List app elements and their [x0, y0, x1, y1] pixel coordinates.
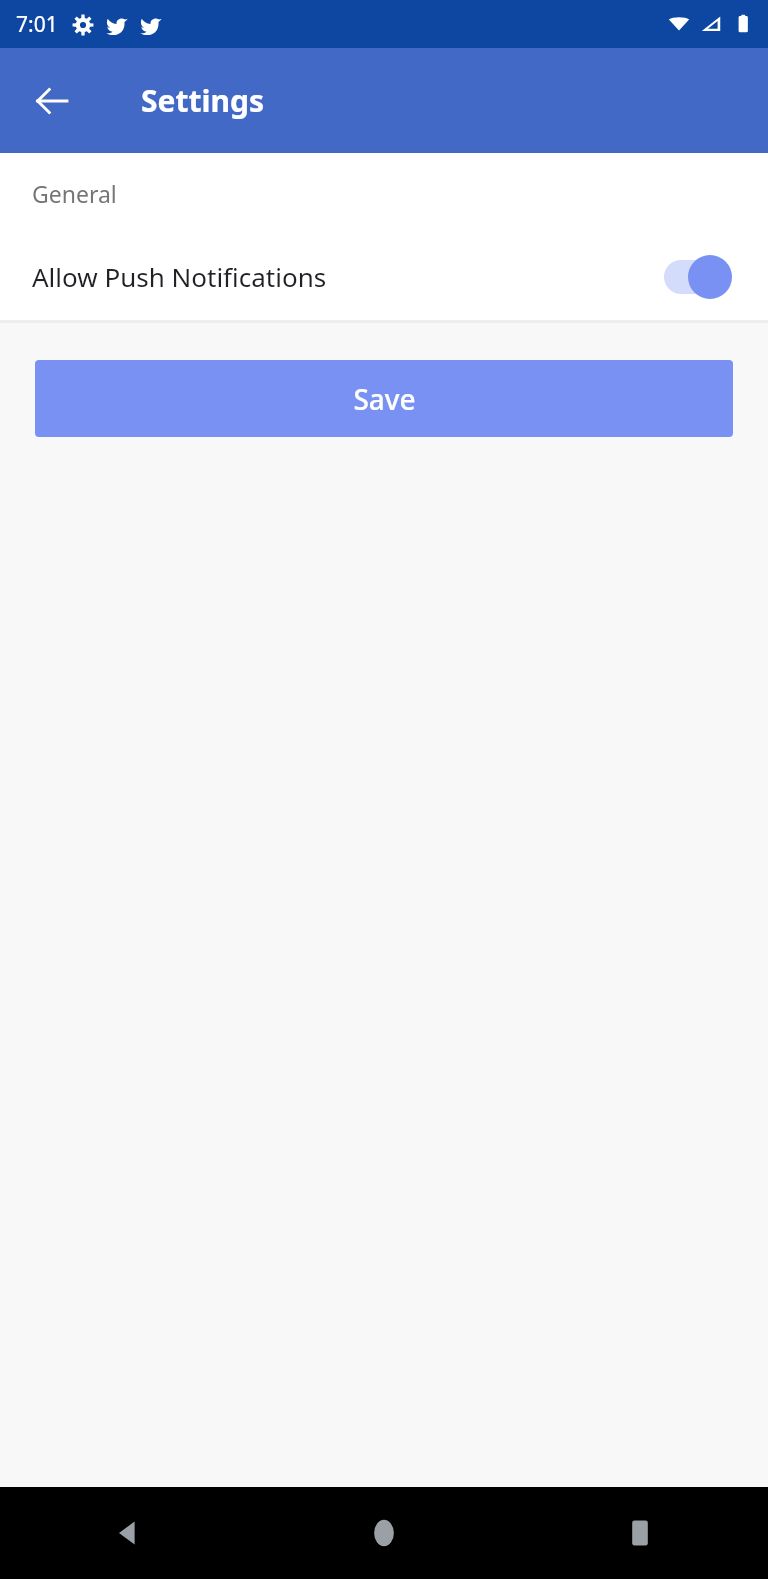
staticText: Allow Push Notifications — [32, 259, 327, 294]
staticText: Save — [353, 380, 416, 418]
staticText: General — [32, 178, 117, 209]
button[interactable]: Back — [20, 69, 84, 133]
button[interactable]: Allow Push Notifications — [0, 233, 768, 320]
staticText: 7:01 — [16, 10, 58, 39]
button[interactable]: Allow Push Notifications toggle — [660, 253, 734, 301]
button[interactable]: Back — [0, 1487, 256, 1579]
button[interactable]: Home — [256, 1487, 512, 1579]
staticText: Settings — [141, 80, 264, 121]
button[interactable]: Save — [35, 360, 733, 437]
button[interactable]: Recent apps — [512, 1487, 768, 1579]
